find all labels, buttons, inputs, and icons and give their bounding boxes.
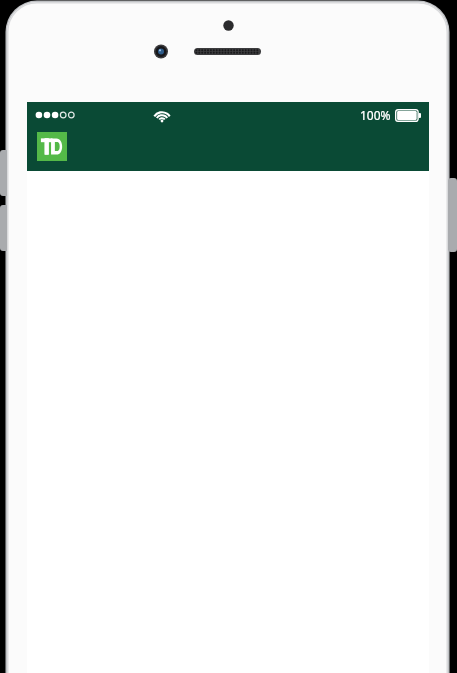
staticText: 100% xyxy=(360,107,391,123)
other: Wi-Fi xyxy=(152,107,172,123)
other: Battery full xyxy=(395,109,421,122)
button[interactable]: TD home xyxy=(37,132,67,161)
